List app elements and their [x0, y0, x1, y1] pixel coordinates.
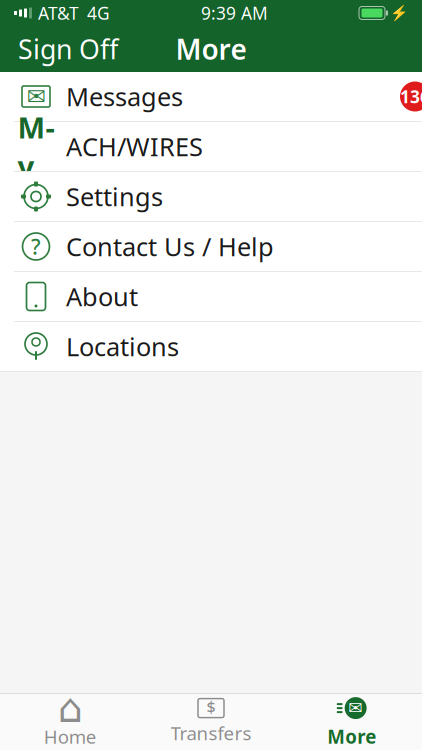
staticText: $: [206, 696, 215, 717]
staticText: 136: [400, 85, 422, 108]
button[interactable]: About: [0, 272, 422, 322]
staticText: Transfers: [170, 721, 251, 745]
staticText: ✉: [26, 84, 45, 109]
staticText: 4G: [87, 1, 110, 24]
staticText: Settings: [66, 180, 163, 213]
button[interactable]: My: [0, 122, 422, 172]
staticText: Messages: [66, 80, 183, 113]
staticText: AT&T: [38, 1, 79, 24]
staticText: ⌂: [58, 685, 83, 731]
staticText: More: [327, 724, 376, 749]
button[interactable]: $: [141, 694, 281, 750]
staticText: ?: [31, 232, 41, 261]
staticText: ✉: [348, 698, 363, 718]
button[interactable]: ✉: [0, 72, 422, 122]
staticText: Contact Us / Help: [66, 230, 274, 263]
staticText: More: [175, 30, 246, 68]
staticText: ACH/WIRES: [66, 130, 203, 163]
staticText: Sign Off: [18, 31, 118, 67]
staticText: About: [66, 280, 138, 313]
button[interactable]: Locations: [0, 322, 422, 372]
button[interactable]: Settings: [0, 172, 422, 222]
staticText: ⚡: [390, 5, 408, 21]
staticText: Locations: [66, 330, 179, 363]
button[interactable]: ⌂: [0, 694, 141, 750]
button[interactable]: ?: [0, 222, 422, 272]
button[interactable]: Sign Off: [0, 26, 136, 72]
staticText: 9:39 AM: [201, 1, 268, 24]
staticText: Home: [44, 724, 97, 749]
staticText: My: [17, 107, 54, 185]
button[interactable]: ✉: [281, 694, 422, 750]
